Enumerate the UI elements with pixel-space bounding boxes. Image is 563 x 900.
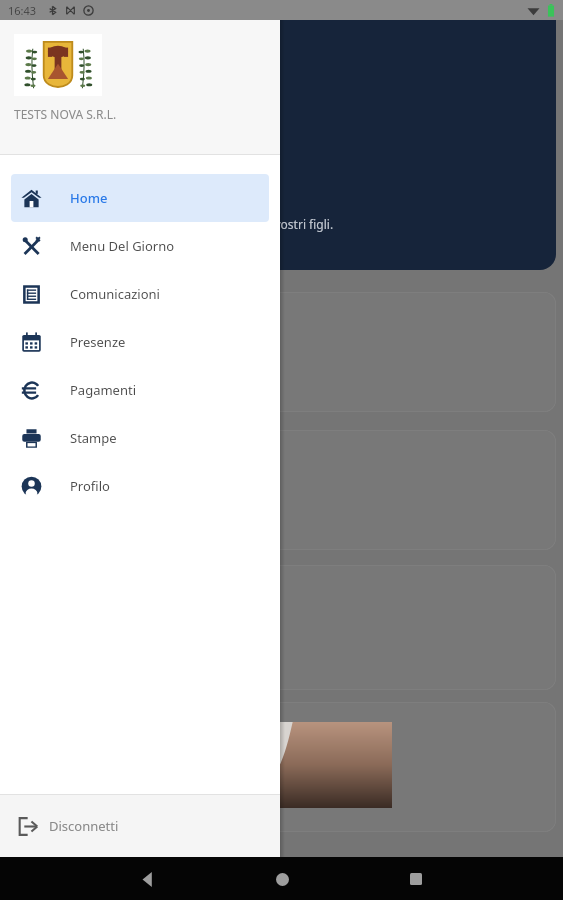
staticText: Home: [70, 189, 108, 207]
staticText: Scuola: [24, 76, 125, 118]
button[interactable]: Recent apps: [396, 859, 436, 899]
staticText: Gestisci comodamente i servizi scolastic…: [24, 216, 334, 232]
button[interactable]: Back: [128, 859, 168, 899]
button[interactable]: [10, 702, 556, 832]
button[interactable]: [10, 430, 556, 550]
staticText: Comunicazioni: [70, 285, 160, 303]
button[interactable]: Comunicazioni: [11, 270, 269, 318]
button[interactable]: [10, 565, 556, 690]
staticText: TESTS NOVA S.R.L.: [14, 106, 117, 122]
button[interactable]: Stampe: [11, 414, 269, 462]
button[interactable]: Disconnetti: [0, 795, 280, 857]
staticText: 16:43: [8, 3, 37, 18]
button[interactable]: Menu Del Giorno: [11, 222, 269, 270]
button[interactable]: Home: [262, 859, 302, 899]
staticText: Profilo: [70, 477, 110, 495]
staticText: VAI ALLE COMUNICAZIONI: [24, 248, 190, 266]
staticText: in tasca: [24, 118, 144, 160]
button[interactable]: VAI ALLE COMUNICAZIONI: [24, 248, 190, 266]
staticText: Menu Del Giorno: [70, 237, 175, 255]
button[interactable]: Presenze: [11, 318, 269, 366]
staticText: Pagamenti: [70, 381, 137, 399]
button[interactable]: Pagamenti: [11, 366, 269, 414]
staticText: Presenze: [70, 333, 126, 351]
button[interactable]: [10, 292, 556, 412]
staticText: Stampe: [70, 429, 117, 447]
staticText: Disconnetti: [49, 817, 119, 835]
button[interactable]: Profilo: [11, 462, 269, 510]
button[interactable]: Home: [11, 174, 269, 222]
